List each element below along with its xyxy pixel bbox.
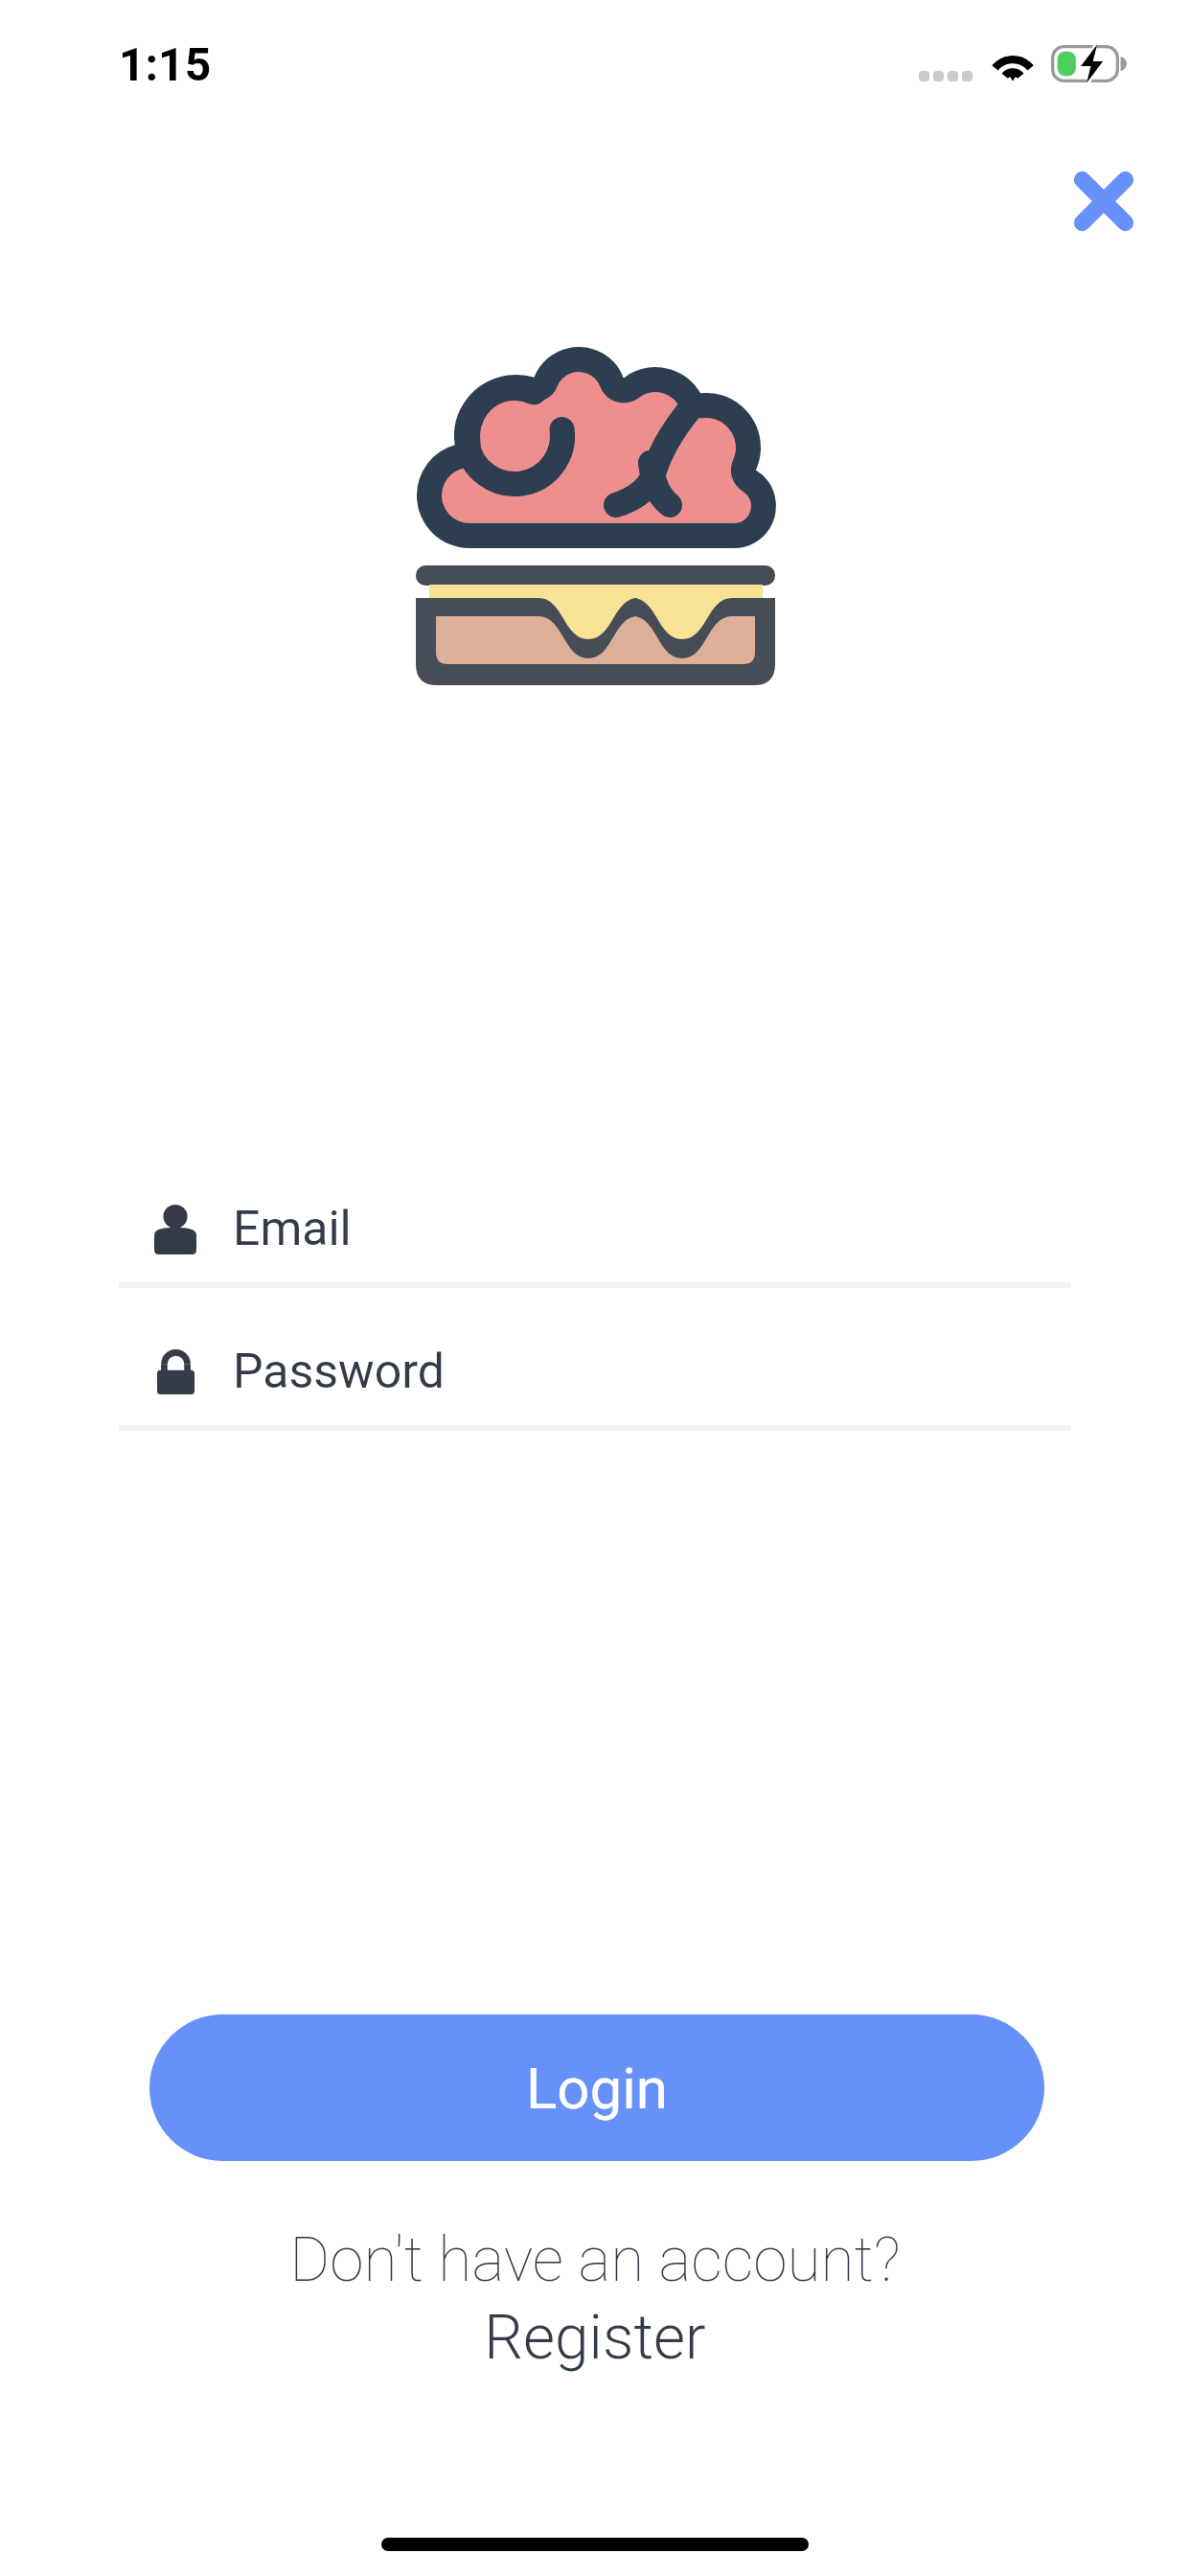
staticText: Email: [233, 1201, 352, 1257]
button[interactable]: Login: [149, 2014, 1044, 2161]
button[interactable]: Don't have an account?: [0, 2224, 1190, 2374]
button[interactable]: Email: [119, 1184, 1071, 1288]
staticText: 1:15: [119, 37, 212, 91]
staticText: Login: [526, 2055, 668, 2122]
staticText: Register: [484, 2302, 706, 2374]
staticText: Password: [233, 1344, 445, 1400]
staticText: Don't have an account?: [289, 2224, 901, 2296]
button[interactable]: Close: [1046, 144, 1161, 259]
button[interactable]: Password: [119, 1326, 1071, 1431]
